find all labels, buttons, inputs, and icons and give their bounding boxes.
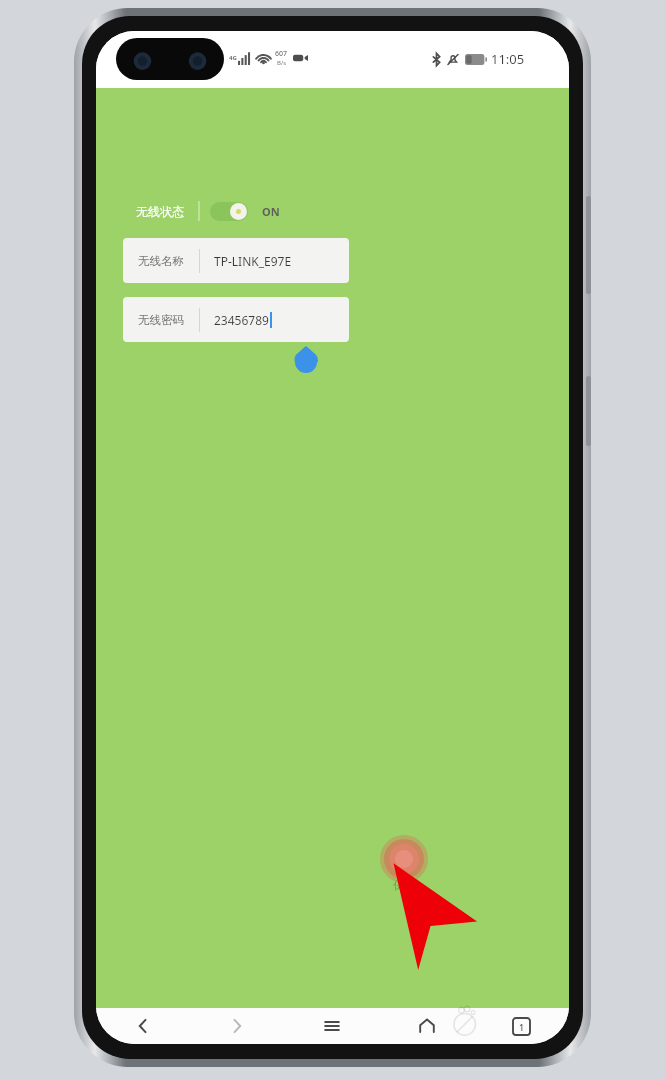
staticText: 无线密码 <box>138 313 184 327</box>
staticText: 4G <box>229 54 237 62</box>
button[interactable]: Menu <box>284 1008 379 1044</box>
button[interactable]: Home <box>379 1008 474 1044</box>
staticText: 23456789 <box>214 312 269 328</box>
staticText: 保存 <box>393 878 415 892</box>
button[interactable]: Forward <box>190 1008 284 1044</box>
staticText: 11:05 <box>491 50 525 68</box>
staticText: 607 <box>275 49 288 59</box>
button[interactable]: 无线名称 <box>123 238 349 283</box>
button[interactable]: 无线状态 <box>136 201 280 221</box>
button[interactable]: 无线密码 <box>123 297 349 342</box>
staticText: TP-LINK_E97E <box>214 253 292 269</box>
button[interactable]: Tabs: 1 <box>474 1008 569 1044</box>
staticText: 1 <box>519 1021 525 1033</box>
staticText: 无线名称 <box>138 254 184 268</box>
staticText: 无线状态 <box>136 204 184 219</box>
button[interactable]: 保存 <box>374 834 434 906</box>
staticText: ON <box>262 204 280 219</box>
button[interactable]: Wireless on toggle <box>210 202 248 221</box>
staticText: B/s <box>277 59 287 67</box>
button[interactable]: Back <box>96 1008 190 1044</box>
